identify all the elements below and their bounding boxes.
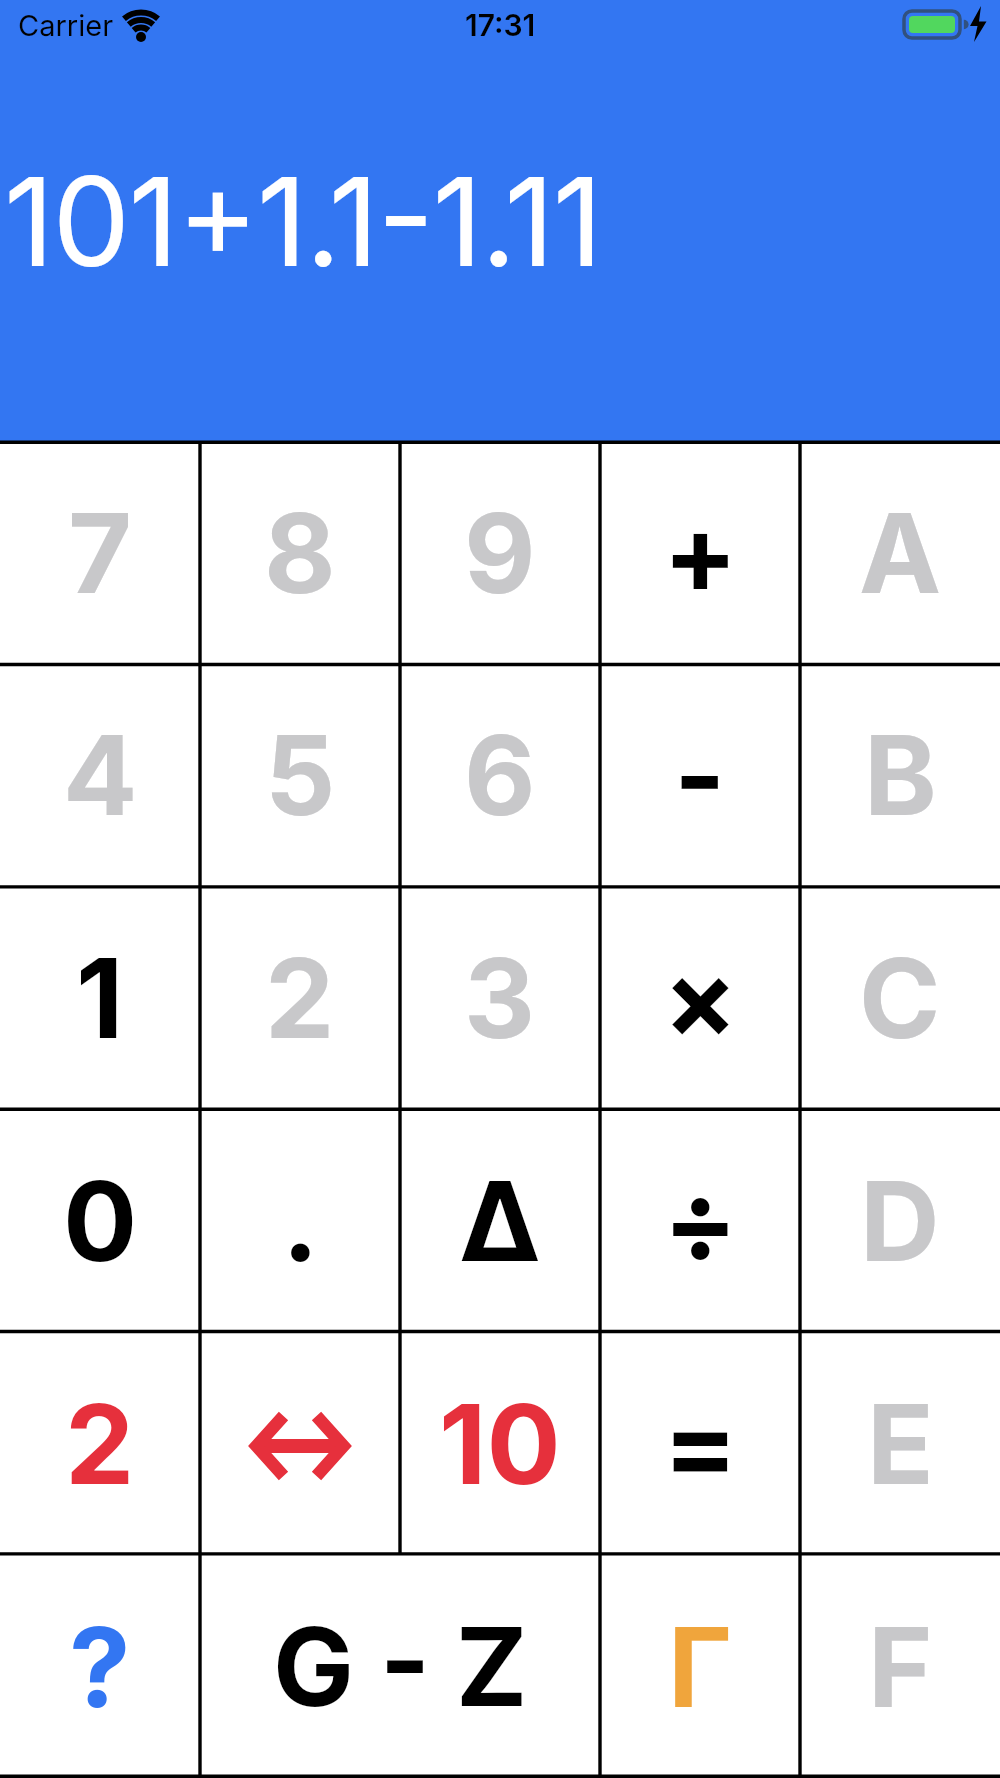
button[interactable]: 8 [200,441,400,663]
staticText: A [859,486,942,619]
button[interactable]: 7 [0,441,200,663]
button[interactable]: B [800,663,1000,886]
staticText: Carrier [18,8,114,43]
staticText: 6 [464,708,536,841]
button[interactable]: ÷ [600,1109,800,1332]
button[interactable]: 4 [0,663,200,886]
staticText: 3 [464,931,536,1064]
button[interactable]: Γ [600,1555,800,1778]
button[interactable]: 9 [400,441,600,663]
staticText: G - Z [273,1601,528,1732]
staticText: 10 [439,1377,561,1510]
staticText: = [663,1377,738,1510]
button[interactable]: ? [0,1555,200,1778]
staticText: . [282,1154,319,1287]
staticText: D [860,1154,940,1287]
staticText: 1 [76,931,124,1064]
staticText: E [867,1377,934,1510]
staticText: 8 [264,486,336,619]
button[interactable]: D [800,1109,1000,1332]
staticText: 9 [464,486,536,619]
staticText: - [674,708,726,841]
button[interactable]: × [600,886,800,1109]
staticText: B [864,708,937,841]
staticText: 5 [265,708,336,841]
staticText: 2 [265,931,335,1064]
staticText: 101+1.1-1.11 [4,147,602,296]
staticText: 7 [68,486,132,619]
staticText: 2 [65,1377,135,1510]
staticText: 17:31 [465,7,536,43]
button[interactable]: G - Z [200,1555,600,1778]
button[interactable]: 0 [0,1109,200,1332]
button[interactable]: 3 [400,886,600,1109]
staticText: 0 [63,1154,138,1287]
staticText: C [859,931,941,1064]
button[interactable]: A [800,441,1000,663]
button[interactable]: 10 [400,1332,600,1555]
button[interactable]: + [600,441,800,663]
staticText: ? [69,1600,131,1733]
staticText: F [868,1600,933,1733]
button[interactable]: E [800,1332,1000,1555]
button[interactable]: Δ [400,1109,600,1332]
staticText: + [663,486,738,619]
staticText: Δ [459,1154,541,1287]
button[interactable]: C [800,886,1000,1109]
button[interactable]: F [800,1555,1000,1778]
button[interactable]: = [600,1332,800,1555]
button[interactable]: 2 [0,1332,200,1555]
staticText: × [663,931,738,1064]
button[interactable]: 2 [200,886,400,1109]
button[interactable] [200,1332,400,1555]
button[interactable]: . [200,1109,400,1332]
button[interactable]: 6 [400,663,600,886]
button[interactable]: 5 [200,663,400,886]
button[interactable]: 1 [0,886,200,1109]
staticText: 4 [63,708,138,841]
button[interactable]: - [600,663,800,886]
staticText: Γ [668,1600,733,1733]
staticText: ÷ [663,1154,738,1287]
